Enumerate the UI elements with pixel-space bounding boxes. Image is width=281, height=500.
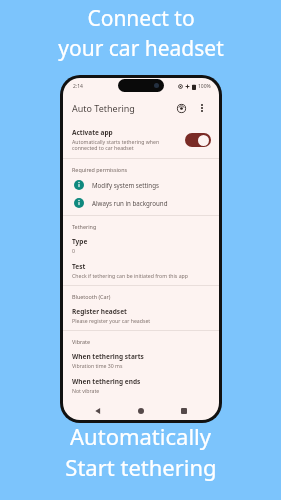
button[interactable]: Register headset: [63, 303, 219, 328]
staticText: Automatically: [70, 421, 211, 451]
button[interactable]: Test: [63, 258, 219, 283]
button[interactable]: More options: [194, 100, 210, 116]
staticText: 0: [72, 247, 75, 254]
staticText: Test: [72, 262, 86, 271]
staticText: Bluetooth (Car): [72, 293, 111, 300]
staticText: 100%: [198, 83, 211, 90]
button[interactable]: When tethering starts: [63, 348, 219, 373]
button[interactable]: Activate app: [63, 123, 219, 158]
staticText: Tethering: [72, 223, 97, 230]
staticText: Type: [72, 237, 88, 246]
staticText: Activate app: [72, 128, 113, 137]
button[interactable]: Privacy: [173, 100, 189, 116]
button[interactable]: Recent apps: [176, 403, 192, 419]
staticText: Register headset: [72, 307, 127, 316]
button[interactable]: Modify system settings: [63, 176, 219, 194]
button[interactable]: Activate app toggle: [185, 133, 211, 147]
staticText: Always run in background: [92, 199, 168, 207]
staticText: When tethering ends: [72, 377, 141, 386]
staticText: Required permissions: [72, 166, 128, 173]
staticText: 2:14: [73, 83, 83, 90]
staticText: your car headset: [58, 34, 224, 63]
staticText: Auto Tethering: [72, 102, 135, 114]
staticText: Modify system settings: [92, 181, 159, 189]
staticText: Not vibrate: [72, 387, 100, 394]
staticText: Automatically starts tethering when conn…: [72, 138, 179, 152]
button[interactable]: Back: [90, 403, 106, 419]
staticText: Vibration time 30 ms: [72, 362, 123, 369]
staticText: When tethering starts: [72, 352, 144, 361]
staticText: Please register your car headset: [72, 317, 151, 324]
button[interactable]: When tethering ends: [63, 373, 219, 398]
staticText: Connect to: [87, 4, 195, 33]
staticText: Vibrate: [72, 338, 91, 345]
button[interactable]: Type: [63, 233, 219, 258]
staticText: Start tethering: [65, 452, 217, 482]
staticText: Check if tethering can be initiated from…: [72, 272, 188, 279]
button[interactable]: Always run in background: [63, 194, 219, 212]
button[interactable]: Home: [133, 403, 149, 419]
